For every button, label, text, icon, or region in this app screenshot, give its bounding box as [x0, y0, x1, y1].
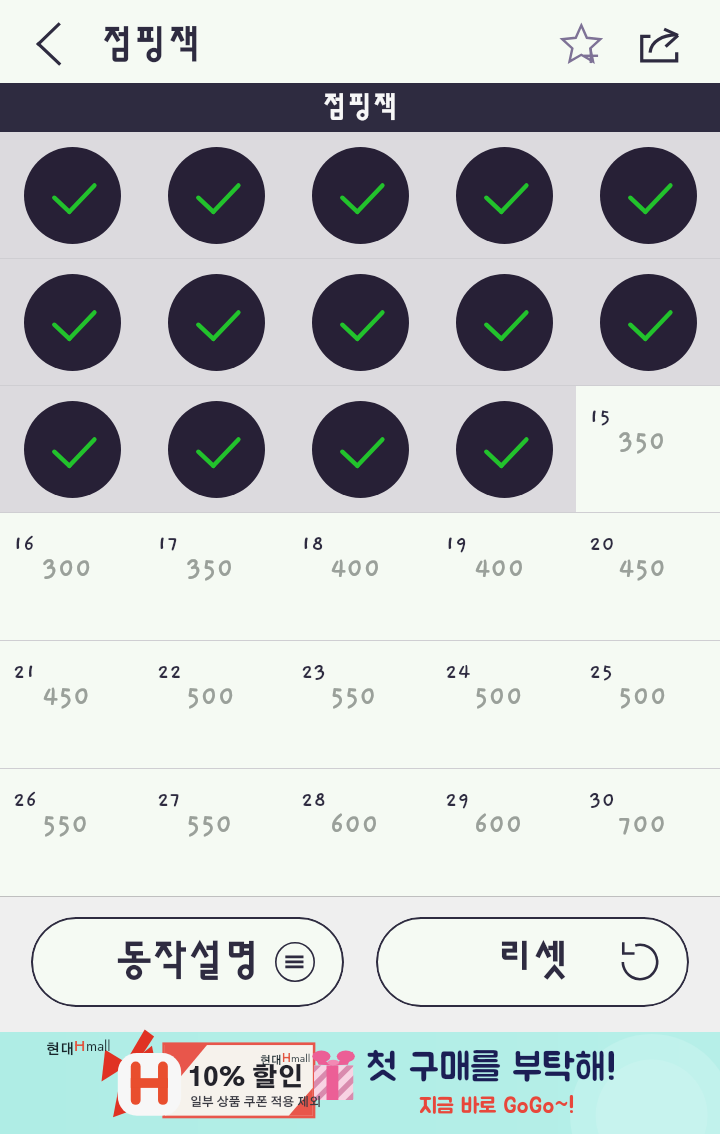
button[interactable] [432, 386, 576, 512]
staticText: H [282, 1049, 291, 1066]
staticText: 300 [42, 554, 93, 584]
staticText: 550 [42, 810, 89, 840]
button[interactable]: 30 [576, 769, 720, 896]
staticText: 27 [157, 788, 181, 812]
button[interactable]: Share [629, 11, 699, 81]
button[interactable]: 19 [432, 513, 576, 640]
staticText: 400 [474, 554, 525, 584]
staticText: 10% 할인 [188, 1066, 304, 1091]
button[interactable] [576, 259, 720, 385]
button[interactable]: 25 [576, 641, 720, 768]
staticText: 18 [301, 532, 325, 556]
button[interactable] [432, 132, 576, 258]
staticText: 450 [42, 682, 91, 712]
button[interactable] [144, 259, 288, 385]
button[interactable]: 20 [576, 513, 720, 640]
button[interactable] [288, 259, 432, 385]
staticText: 점핑잭 [101, 26, 201, 63]
staticText: 700 [618, 810, 667, 840]
button[interactable]: 24 [432, 641, 576, 768]
staticText: 17 [157, 532, 179, 556]
button[interactable]: Add to favorites [548, 11, 618, 81]
staticText: 21 [13, 660, 36, 684]
button[interactable] [144, 132, 288, 258]
staticText: 600 [330, 810, 379, 840]
staticText: 20 [589, 532, 616, 556]
button[interactable] [144, 386, 288, 512]
staticText: 350 [186, 554, 234, 584]
button[interactable] [0, 132, 144, 258]
button[interactable]: Back [16, 12, 78, 72]
button[interactable]: 17 [144, 513, 288, 640]
staticText: mall [86, 1036, 111, 1057]
staticText: 25 [589, 660, 614, 684]
staticText: 550 [186, 810, 233, 840]
staticText: 15 [589, 405, 612, 429]
staticText: 26 [13, 788, 38, 812]
button[interactable]: 15 [576, 386, 720, 512]
staticText: 350 [618, 427, 666, 457]
staticText: 450 [618, 554, 667, 584]
staticText: 19 [445, 532, 468, 556]
staticText: 500 [618, 682, 668, 712]
staticText: 550 [330, 682, 377, 712]
button[interactable]: Advertisement [0, 1032, 720, 1134]
button[interactable]: 동작설명 [31, 917, 344, 1007]
button[interactable] [288, 132, 432, 258]
staticText: H [74, 1035, 86, 1057]
button[interactable]: 26 [0, 769, 144, 896]
button[interactable] [432, 259, 576, 385]
staticText: 22 [157, 660, 183, 684]
button[interactable]: 리셋 [376, 917, 689, 1007]
staticText: 현대 [46, 1043, 74, 1057]
staticText: 30 [589, 788, 616, 812]
button[interactable]: 27 [144, 769, 288, 896]
button[interactable]: 29 [432, 769, 576, 896]
button[interactable]: 16 [0, 513, 144, 640]
staticText: 28 [301, 788, 327, 812]
button[interactable] [576, 132, 720, 258]
staticText: 24 [445, 660, 471, 684]
staticText: 400 [330, 554, 381, 584]
staticText: 지금 바로 GoGo~! [419, 1095, 575, 1117]
staticText: 16 [13, 532, 35, 556]
button[interactable] [0, 386, 144, 512]
staticText: 동작설명 [116, 941, 260, 981]
staticText: 현대 [260, 1055, 282, 1066]
staticText: 500 [186, 682, 236, 712]
button[interactable] [0, 259, 144, 385]
staticText: 리셋 [497, 941, 569, 981]
staticText: 600 [474, 810, 523, 840]
staticText: 일부 상품 쿠폰 적용 제외 [190, 1096, 322, 1108]
staticText: 첫 구매를 부탁해! [366, 1050, 617, 1088]
button[interactable]: 23 [288, 641, 432, 768]
staticText: 점핑잭 [322, 93, 398, 121]
button[interactable]: 21 [0, 641, 144, 768]
button[interactable] [288, 386, 432, 512]
staticText: 29 [445, 788, 470, 812]
button[interactable]: 28 [288, 769, 432, 896]
button[interactable]: 22 [144, 641, 288, 768]
staticText: 23 [301, 660, 327, 684]
button[interactable]: 18 [288, 513, 432, 640]
staticText: mall [291, 1050, 311, 1066]
staticText: 500 [474, 682, 524, 712]
